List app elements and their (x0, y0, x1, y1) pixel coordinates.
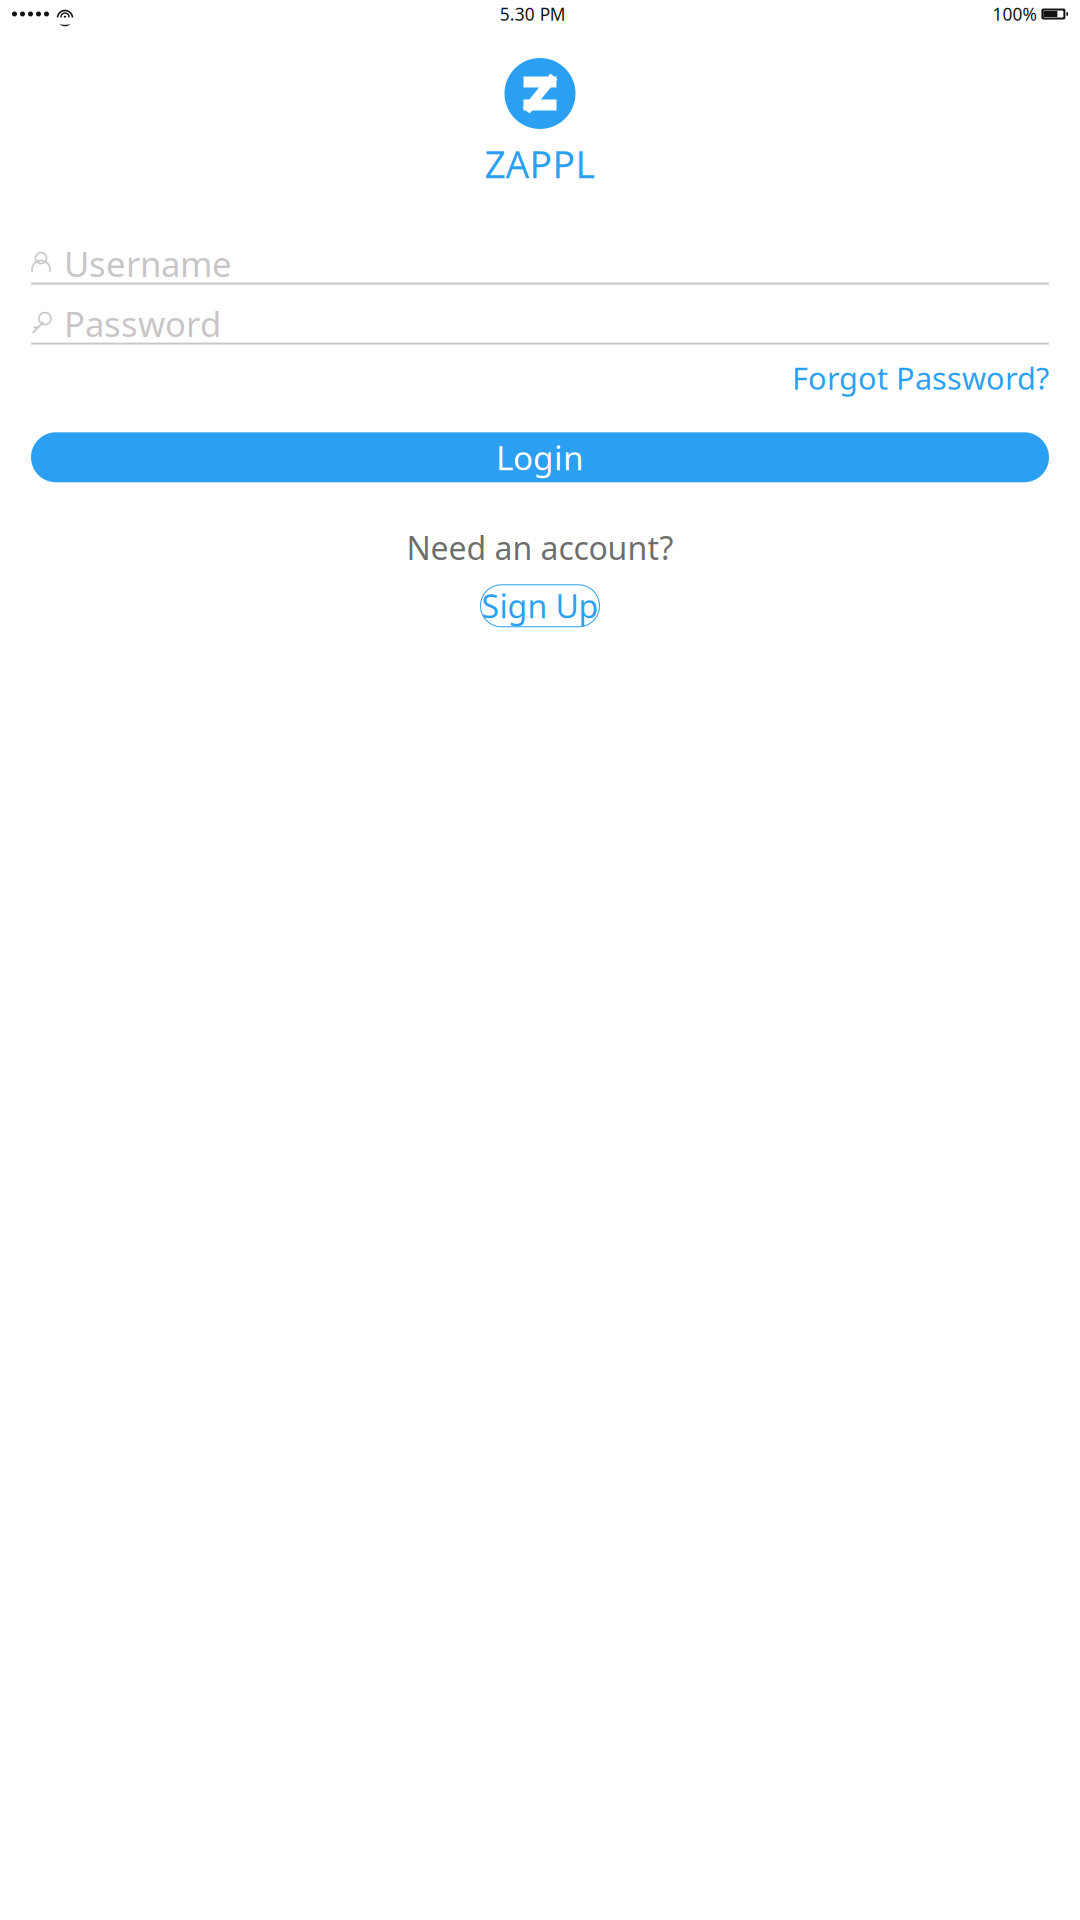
button[interactable]: Forgot Password? (792, 358, 1049, 398)
staticText: 5.30 PM (500, 2, 566, 25)
staticText: Login (496, 435, 584, 479)
staticText: Sign Up (481, 584, 598, 627)
staticText: Need an account? (406, 526, 673, 569)
staticText: ZAPPL (484, 139, 595, 189)
staticText: Username (64, 241, 232, 287)
button[interactable]: Sign Up (480, 585, 599, 627)
staticText: Forgot Password? (792, 358, 1049, 398)
button[interactable]: Login (31, 432, 1049, 482)
staticText: 100% (992, 2, 1036, 25)
staticText: Password (64, 301, 221, 347)
